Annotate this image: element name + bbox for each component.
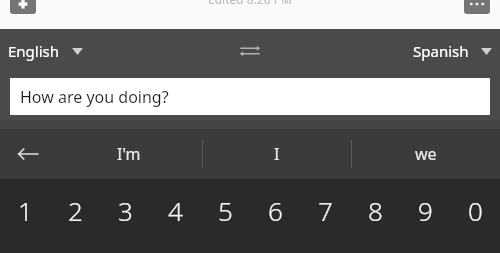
staticText: English — [8, 41, 60, 61]
staticText: 9 — [418, 193, 433, 228]
button[interactable]: I'm — [55, 129, 202, 179]
button[interactable]: 9 — [400, 179, 450, 253]
button[interactable]: I — [203, 129, 351, 179]
button[interactable]: 8 — [350, 179, 400, 253]
staticText: Spanish — [413, 41, 469, 61]
staticText: I — [274, 143, 280, 165]
button[interactable]: we — [352, 129, 500, 179]
button[interactable]: 6 — [250, 179, 300, 253]
button[interactable]: 7 — [300, 179, 350, 253]
staticText: 6 — [268, 193, 283, 228]
staticText: 5 — [218, 193, 233, 228]
staticText: Edited 8:20 PM — [208, 0, 292, 7]
button[interactable]: Swap languages — [228, 29, 272, 73]
button[interactable]: Add — [10, 0, 36, 14]
button[interactable]: 3 — [100, 179, 150, 253]
staticText: 8 — [368, 193, 383, 228]
button[interactable]: 2 — [50, 179, 100, 253]
staticText: we — [415, 143, 437, 165]
button[interactable]: More options — [464, 0, 490, 14]
staticText: How are you doing? — [20, 86, 169, 108]
staticText: 7 — [318, 193, 333, 228]
button[interactable]: Back — [0, 129, 55, 179]
staticText: 2 — [68, 193, 83, 228]
button[interactable]: 0 — [450, 179, 500, 253]
staticText: 0 — [468, 193, 483, 228]
button[interactable]: How are you doing? — [10, 78, 490, 115]
button[interactable]: 4 — [150, 179, 200, 253]
button[interactable]: Spanish — [413, 29, 492, 73]
staticText: 3 — [118, 193, 133, 228]
button[interactable]: English — [8, 29, 83, 73]
button[interactable]: 1 — [0, 179, 50, 253]
staticText: 1 — [18, 193, 33, 228]
staticText: 4 — [168, 193, 183, 228]
staticText: I'm — [117, 143, 141, 165]
button[interactable]: 5 — [200, 179, 250, 253]
